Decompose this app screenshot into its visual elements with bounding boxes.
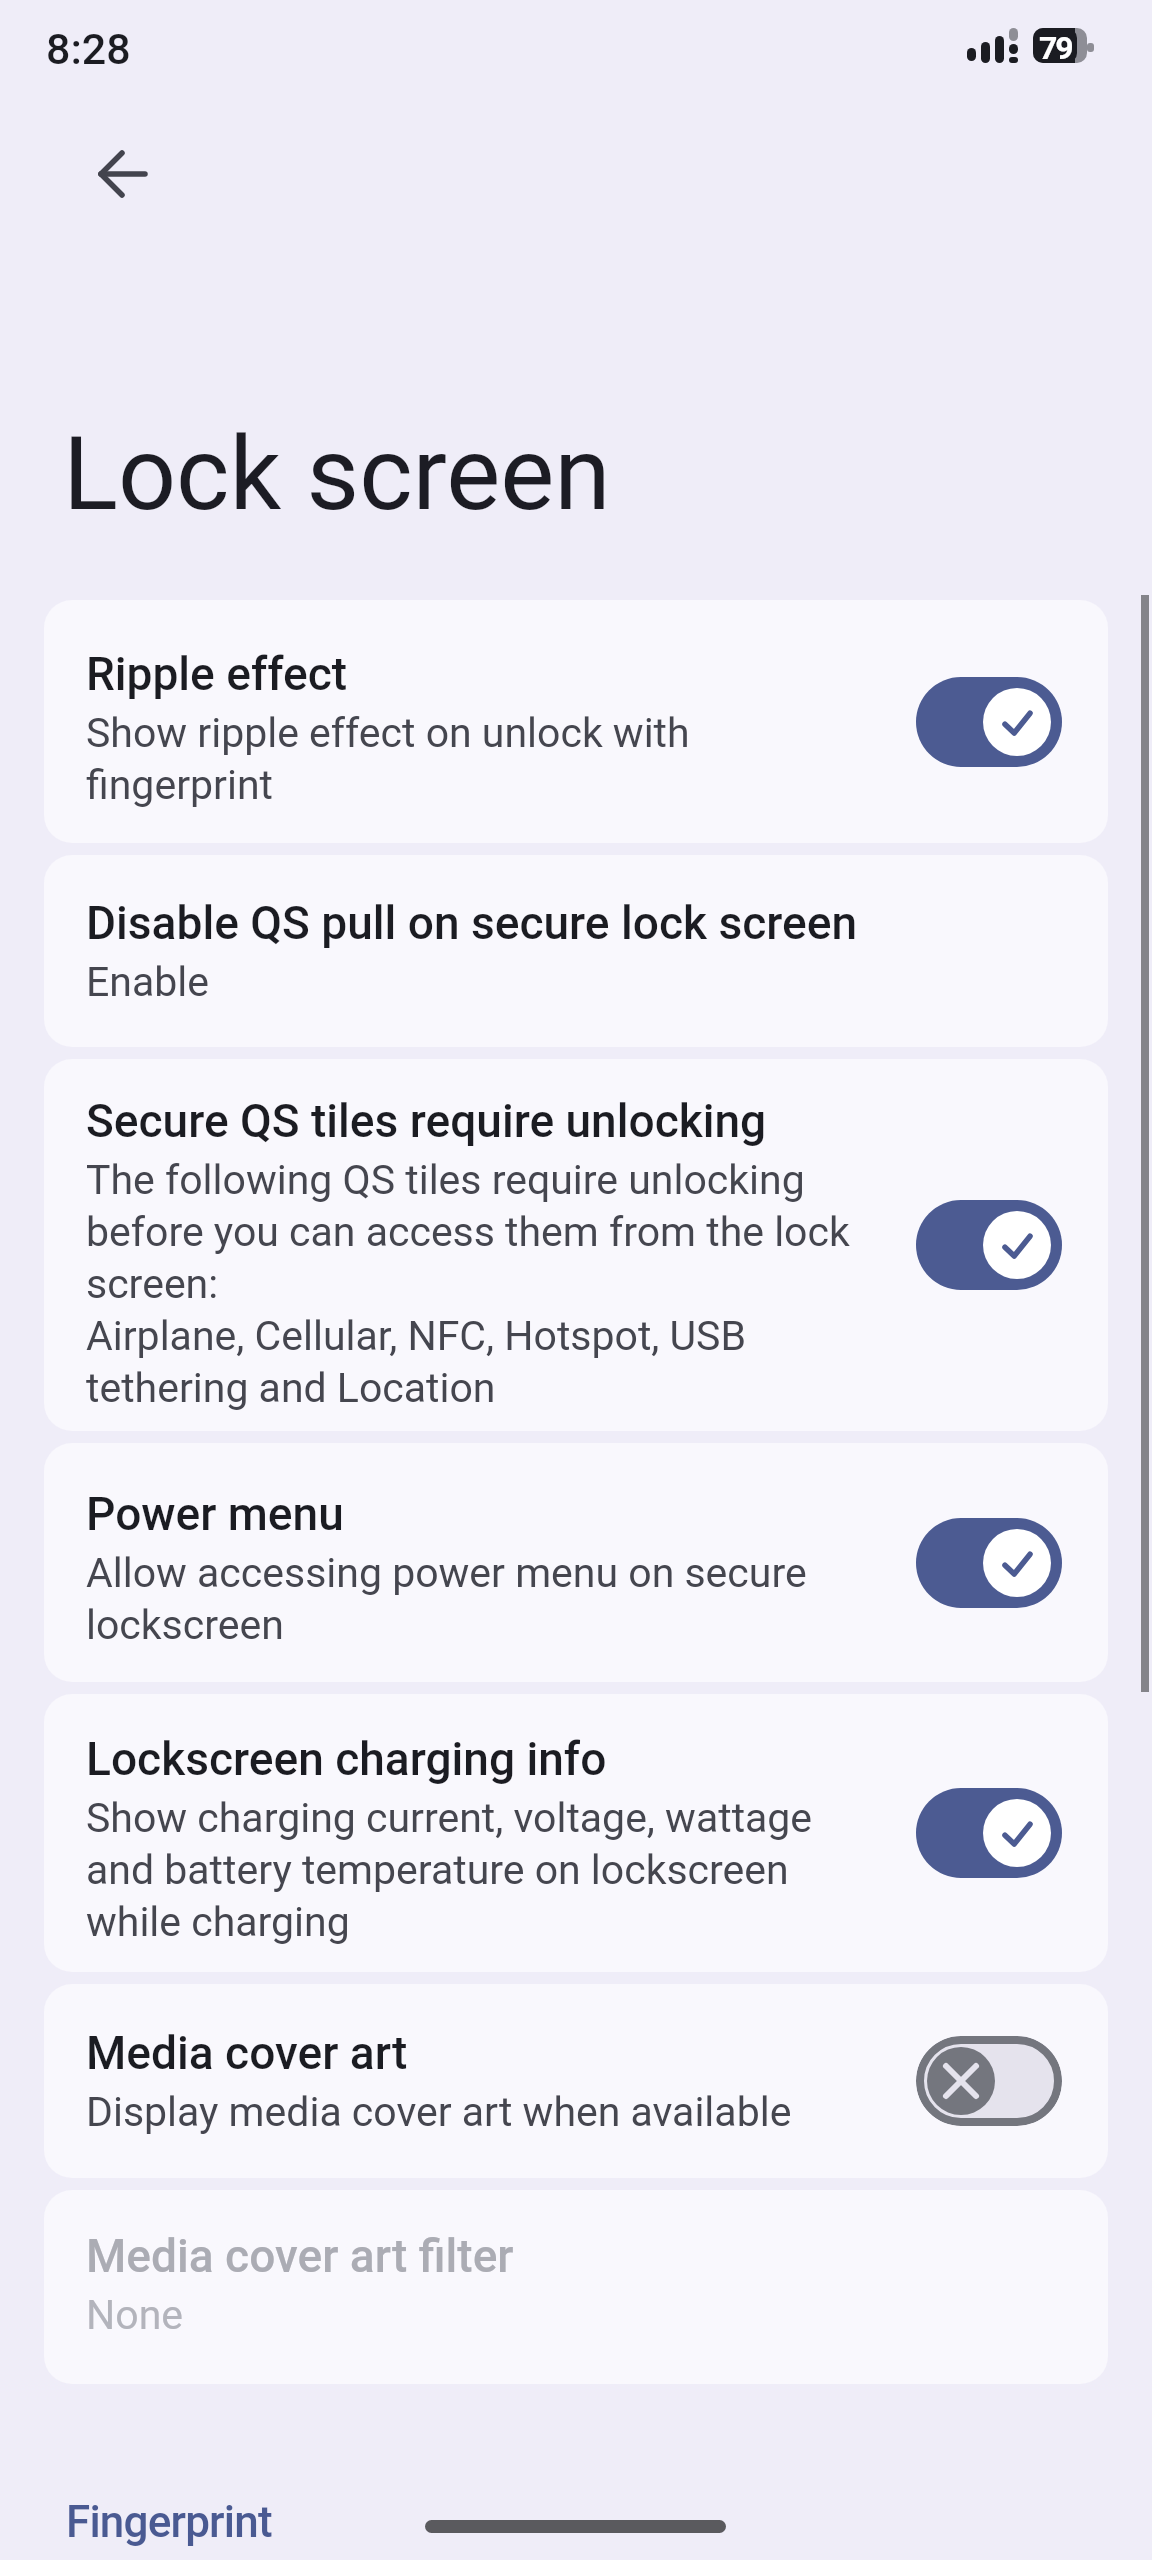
- staticText: Secure QS tiles require unlocking: [86, 1094, 767, 1148]
- staticText: Media cover art filter: [86, 2229, 514, 2283]
- staticText: The following QS tiles require unlocking…: [86, 1156, 850, 1412]
- staticText: Show charging current, voltage, wattage …: [86, 1794, 813, 1946]
- staticText: 79: [1039, 29, 1072, 67]
- staticText: Disable QS pull on secure lock screen: [86, 896, 858, 950]
- button[interactable]: Disable QS pull on secure lock screen: [44, 855, 1108, 1047]
- button[interactable]: Lockscreen charging info: [44, 1694, 1108, 1972]
- staticText: Power menu: [86, 1487, 344, 1541]
- button[interactable]: Fingerprint: [66, 2496, 272, 2548]
- button[interactable]: Power menu: [44, 1443, 1108, 1682]
- button[interactable]: [86, 136, 162, 212]
- button[interactable]: Ripple effect: [44, 600, 1108, 843]
- button[interactable]: Media cover art: [44, 1984, 1108, 2178]
- staticText: Enable: [86, 958, 209, 1006]
- staticText: Allow accessing power menu on secure loc…: [86, 1549, 807, 1649]
- staticText: Ripple effect: [86, 647, 348, 701]
- staticText: None: [86, 2291, 184, 2339]
- staticText: Display media cover art when available: [86, 2088, 792, 2136]
- staticText: Lock screen: [63, 414, 611, 534]
- staticText: Lockscreen charging info: [86, 1732, 607, 1786]
- staticText: 8:28: [46, 24, 131, 74]
- staticText: Media cover art: [86, 2026, 408, 2080]
- button[interactable]: Media cover art filter: [44, 2190, 1108, 2384]
- button[interactable]: Secure QS tiles require unlocking: [44, 1059, 1108, 1431]
- staticText: Show ripple effect on unlock with finger…: [86, 709, 690, 809]
